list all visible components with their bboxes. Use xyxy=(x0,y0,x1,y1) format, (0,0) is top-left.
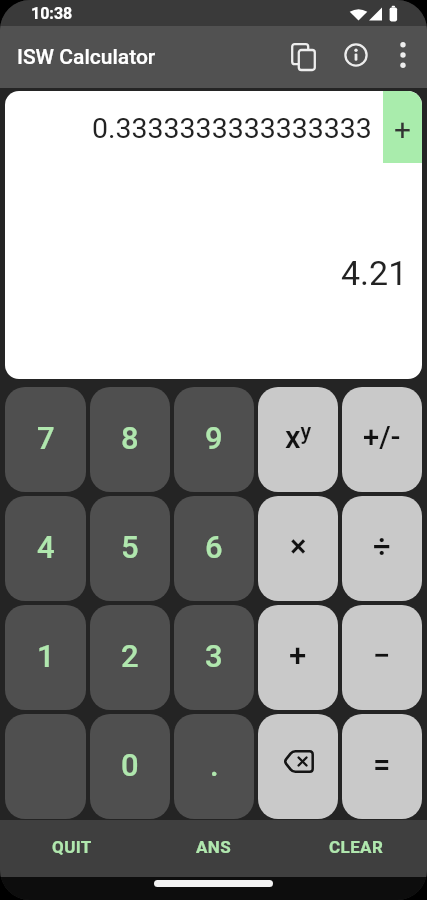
button[interactable] xyxy=(384,36,422,74)
staticText: 2 xyxy=(121,638,139,674)
staticText: 5 xyxy=(121,529,139,565)
staticText: ANS xyxy=(196,837,232,857)
staticText: +/- xyxy=(363,420,401,454)
button[interactable]: CLEAR xyxy=(285,820,427,877)
staticText: 0 xyxy=(121,747,139,783)
button[interactable] xyxy=(333,32,379,78)
staticText: 4 xyxy=(37,529,55,565)
button[interactable]: ANS xyxy=(143,820,285,877)
button[interactable]: 5 xyxy=(90,496,170,601)
staticText: ÷ xyxy=(373,528,391,564)
button[interactable]: = xyxy=(342,714,422,819)
button[interactable]: xy xyxy=(258,387,338,492)
button[interactable]: 8 xyxy=(90,387,170,492)
button[interactable]: 0 xyxy=(90,714,170,819)
button[interactable]: 1 xyxy=(5,605,86,710)
staticText: 6 xyxy=(205,529,223,565)
staticText: CLEAR xyxy=(329,837,384,857)
button[interactable]: ÷ xyxy=(342,496,422,601)
button[interactable] xyxy=(281,33,327,79)
staticText: 4.21 xyxy=(341,253,408,293)
staticText: QUIT xyxy=(52,837,92,857)
staticText: 9 xyxy=(205,420,223,456)
staticText: − xyxy=(373,637,391,673)
staticText: 8 xyxy=(121,420,139,456)
button[interactable]: 3 xyxy=(174,605,254,710)
button[interactable] xyxy=(258,714,338,819)
staticText: ISW Calculator xyxy=(17,45,156,70)
button[interactable]: QUIT xyxy=(0,820,143,877)
button[interactable]: − xyxy=(342,605,422,710)
button[interactable]: × xyxy=(258,496,338,601)
button[interactable]: + xyxy=(258,605,338,710)
staticText: . xyxy=(210,747,219,783)
staticText: 0.3333333333333333 xyxy=(92,112,372,145)
button[interactable]: 2 xyxy=(90,605,170,710)
staticText: 3 xyxy=(205,638,223,674)
staticText: + xyxy=(394,112,412,147)
button[interactable]: 7 xyxy=(5,387,86,492)
button[interactable]: + xyxy=(383,91,422,163)
staticText: 7 xyxy=(37,420,55,456)
staticText: 10:38 xyxy=(31,4,73,23)
staticText: = xyxy=(373,746,391,782)
staticText: + xyxy=(289,637,307,673)
button[interactable]: 6 xyxy=(174,496,254,601)
button[interactable]: +/- xyxy=(342,387,422,492)
button[interactable]: 4 xyxy=(5,496,86,601)
staticText: 1 xyxy=(37,638,55,674)
button[interactable]: 9 xyxy=(174,387,254,492)
button[interactable] xyxy=(5,714,86,819)
staticText: × xyxy=(290,528,307,564)
staticText: xy xyxy=(285,419,312,456)
button[interactable]: . xyxy=(174,714,254,819)
